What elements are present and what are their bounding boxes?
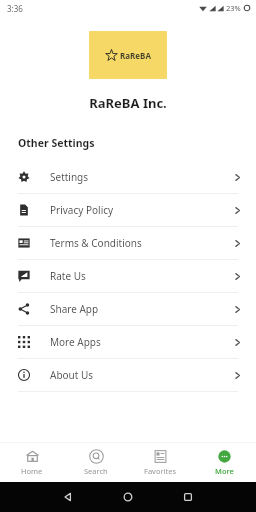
button[interactable]: Settings <box>0 161 256 193</box>
button[interactable]: Home <box>115 484 141 510</box>
staticText: Favorites <box>144 466 177 476</box>
staticText: Home <box>21 466 43 476</box>
staticText: Share App <box>50 302 233 316</box>
button[interactable]: Favorites <box>128 443 192 482</box>
staticText: More <box>215 466 234 476</box>
button[interactable]: Search <box>64 443 128 482</box>
button[interactable]: Rate Us <box>0 260 256 292</box>
staticText: Terms & Conditions <box>50 236 233 250</box>
button[interactable]: More Apps <box>0 326 256 358</box>
staticText: 3:36 <box>7 3 23 14</box>
staticText: Settings <box>50 170 233 184</box>
staticText: RaReBA Inc. <box>0 94 256 112</box>
button[interactable]: Recent apps <box>175 484 201 510</box>
staticText: 23% <box>226 3 241 13</box>
staticText: About Us <box>50 368 233 382</box>
staticText: Other Settings <box>18 136 95 150</box>
button[interactable]: Home <box>0 443 64 482</box>
button[interactable]: Privacy Policy <box>0 194 256 226</box>
staticText: RaReBA <box>120 50 151 61</box>
button[interactable]: Terms & Conditions <box>0 227 256 259</box>
staticText: Search <box>84 466 108 476</box>
staticText: More Apps <box>50 335 233 349</box>
button[interactable]: More <box>192 443 256 482</box>
staticText: Rate Us <box>50 269 233 283</box>
button[interactable]: Share App <box>0 293 256 325</box>
button[interactable]: About Us <box>0 359 256 391</box>
staticText: Privacy Policy <box>50 203 233 217</box>
button[interactable]: Back <box>55 484 81 510</box>
